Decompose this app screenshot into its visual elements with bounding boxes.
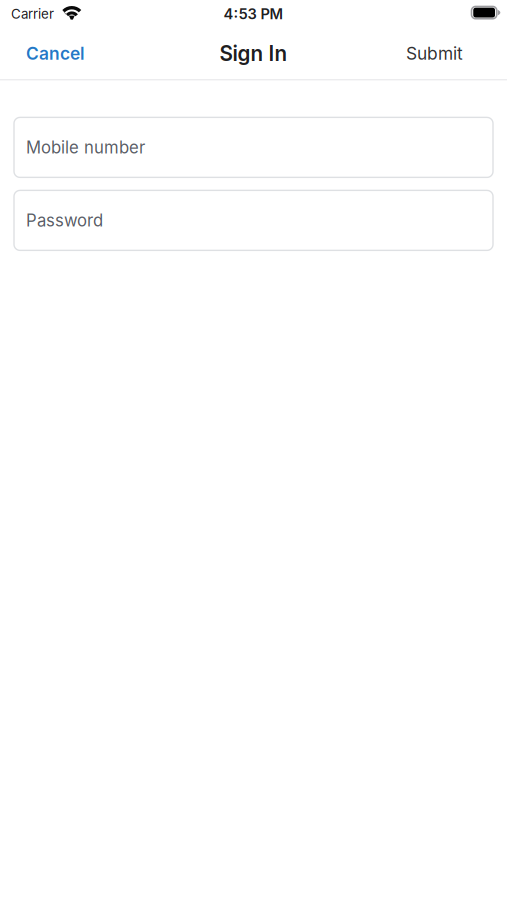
button[interactable]: Submit [392, 31, 507, 75]
staticText: Mobile number [26, 137, 145, 157]
staticText: Sign In [219, 41, 287, 66]
staticText: Cancel [26, 43, 85, 64]
staticText: Submit [406, 43, 463, 64]
staticText: Password [26, 210, 103, 230]
staticText: 4:53 PM [223, 5, 283, 23]
button[interactable]: Mobile number [14, 117, 493, 177]
button[interactable]: Cancel [0, 31, 99, 75]
staticText: Carrier [11, 6, 54, 22]
button[interactable]: Password [14, 190, 493, 250]
